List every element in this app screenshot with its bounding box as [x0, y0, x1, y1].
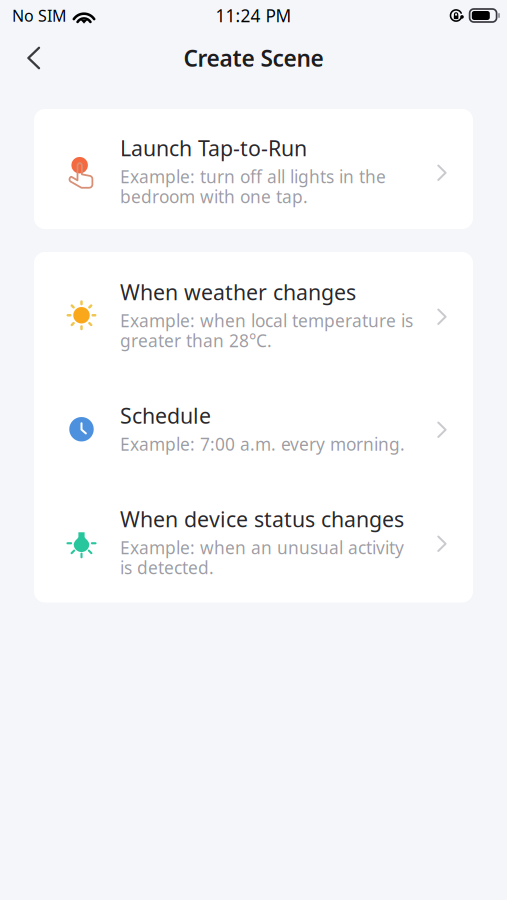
- button[interactable]: Back: [13, 32, 54, 84]
- button[interactable]: When weather changes: [34, 252, 473, 375]
- staticText: 11:24 PM: [215, 4, 291, 27]
- staticText: Launch Tap-to-Run: [120, 134, 307, 162]
- staticText: is detected.: [120, 556, 214, 579]
- staticText: Create Scene: [183, 43, 323, 73]
- button[interactable]: When device status changes: [34, 479, 473, 602]
- staticText: Example: turn off all lights in the: [120, 165, 386, 188]
- button[interactable]: Launch Tap-to-Run: [34, 109, 473, 229]
- staticText: Schedule: [120, 401, 211, 430]
- staticText: Example: when an unusual activity: [120, 536, 404, 559]
- staticText: When device status changes: [120, 505, 404, 533]
- staticText: No SIM: [12, 5, 67, 26]
- staticText: When weather changes: [120, 278, 356, 306]
- staticText: bedroom with one tap.: [120, 185, 308, 208]
- staticText: Example: 7:00 a.m. every morning.: [120, 432, 405, 455]
- staticText: greater than 28°C.: [120, 329, 272, 352]
- staticText: Example: when local temperature is: [120, 309, 413, 332]
- button[interactable]: Schedule: [34, 375, 473, 479]
